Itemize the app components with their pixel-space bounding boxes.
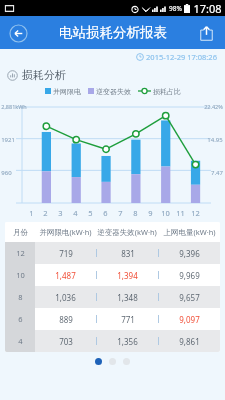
- staticText: 4: [18, 336, 23, 346]
- staticText: 1: [29, 208, 34, 218]
- button[interactable]: 6: [5, 308, 220, 330]
- staticText: 98%: [169, 4, 182, 13]
- button[interactable]: 4: [5, 330, 220, 352]
- staticText: 10: [16, 270, 25, 280]
- staticText: 电站损耗分析报表: [59, 24, 167, 41]
- staticText: 2: [43, 208, 48, 218]
- staticText: 11: [176, 208, 185, 218]
- staticText: 9,097: [179, 314, 200, 325]
- staticText: 960: [1, 169, 12, 177]
- staticText: 2,881kWh: [1, 103, 27, 110]
- staticText: 5: [88, 208, 93, 218]
- staticText: 6: [18, 314, 23, 324]
- staticText: 831: [121, 248, 135, 259]
- staticText: 9,861: [179, 336, 200, 347]
- staticText: 6: [103, 208, 108, 218]
- staticText: 1921: [1, 136, 15, 144]
- staticText: 8: [18, 292, 23, 302]
- staticText: 9,396: [179, 248, 200, 259]
- staticText: 上网电量(kW·h): [163, 227, 216, 237]
- button[interactable]: 8: [5, 286, 220, 308]
- staticText: 719: [59, 248, 73, 259]
- staticText: 并网限电(kW·h): [39, 227, 92, 237]
- staticText: 9,657: [179, 292, 200, 303]
- staticText: 月份: [13, 228, 28, 237]
- staticText: 12: [191, 208, 200, 218]
- staticText: 889: [59, 314, 73, 325]
- staticText: 损耗占比: [153, 87, 181, 96]
- button[interactable]: Back: [6, 21, 30, 45]
- staticText: 1,394: [117, 270, 138, 281]
- staticText: 703: [59, 336, 73, 347]
- staticText: 逆变器失效(kW·h): [97, 227, 157, 237]
- staticText: 7: [118, 208, 123, 218]
- staticText: 逆变器失效: [96, 87, 131, 96]
- staticText: 1,036: [55, 292, 76, 303]
- staticText: 1,487: [55, 270, 76, 281]
- staticText: 2015-12-29 17:08:26: [146, 52, 217, 62]
- staticText: 并网限电: [53, 87, 81, 96]
- staticText: 14.95: [207, 136, 223, 144]
- button[interactable]: 12: [5, 242, 220, 264]
- staticText: 9,969: [179, 270, 200, 281]
- staticText: 4: [73, 208, 78, 218]
- staticText: 损耗分析: [22, 68, 66, 82]
- staticText: 7.47: [211, 169, 223, 177]
- staticText: 10: [161, 208, 170, 218]
- staticText: 12: [16, 248, 25, 258]
- button[interactable]: Page 3: [123, 358, 130, 365]
- button[interactable]: 10: [5, 264, 220, 286]
- button[interactable]: Page 2: [109, 358, 116, 365]
- staticText: 9: [148, 208, 153, 218]
- staticText: 1,348: [117, 292, 138, 303]
- staticText: 8: [133, 208, 138, 218]
- button[interactable]: Page 1: [95, 358, 102, 365]
- staticText: 3: [58, 208, 63, 218]
- staticText: 22.42%: [204, 103, 223, 110]
- staticText: 1,356: [117, 336, 138, 347]
- staticText: 17:08: [193, 1, 222, 16]
- staticText: 771: [121, 314, 135, 325]
- button[interactable]: Share: [193, 20, 219, 46]
